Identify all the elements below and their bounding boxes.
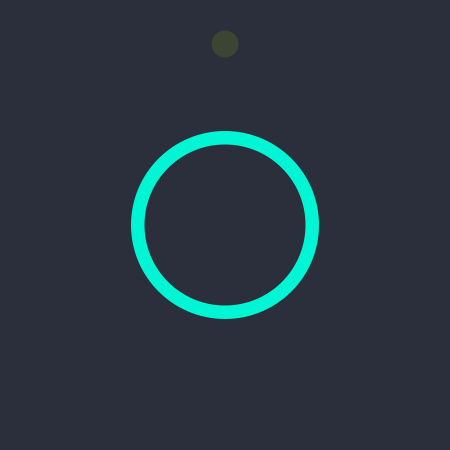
- button[interactable]: Status: [211, 30, 238, 57]
- button[interactable]: Progress: [131, 131, 319, 319]
